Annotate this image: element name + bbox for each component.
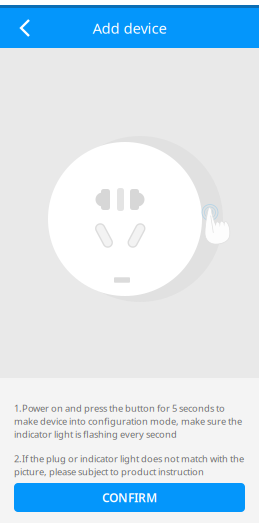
staticText: 2.If the plug or indicator light does no… bbox=[14, 452, 244, 478]
button[interactable]: Back bbox=[8, 8, 44, 48]
staticText: CONFIRM bbox=[102, 489, 157, 505]
button[interactable]: CONFIRM bbox=[14, 483, 245, 512]
staticText: Add device bbox=[92, 18, 166, 38]
staticText: 1.Power on and press the button for 5 se… bbox=[14, 402, 242, 440]
